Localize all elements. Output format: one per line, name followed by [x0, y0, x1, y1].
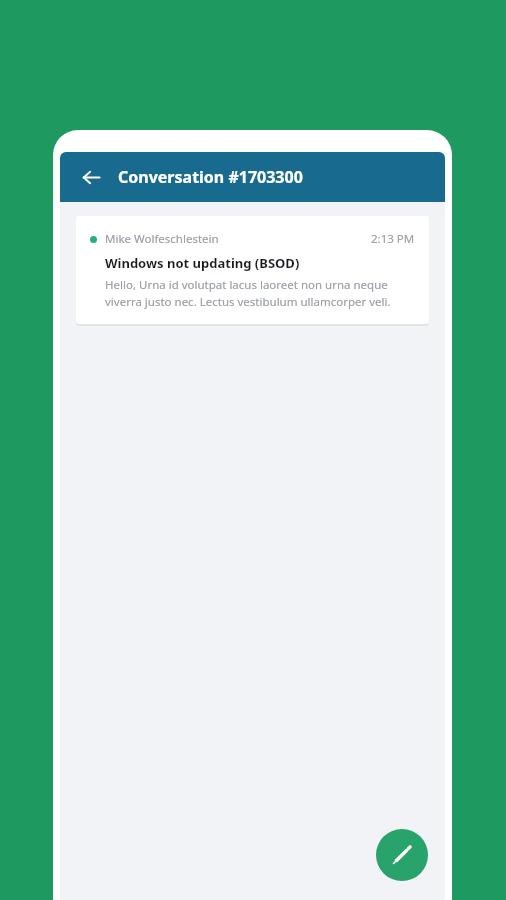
button[interactable]: Back	[75, 161, 107, 193]
staticText: Hello, Urna id volutpat lacus laoreet no…	[105, 277, 415, 309]
staticText: Conversation #1703300	[118, 166, 303, 188]
staticText: Windows not updating (BSOD)	[105, 254, 300, 272]
staticText: Mike Wolfeschlestein	[105, 231, 219, 247]
staticText: 2:13 PM	[371, 231, 415, 247]
button[interactable]: Mike Wolfeschlestein	[76, 216, 429, 324]
button[interactable]: Compose message	[376, 829, 428, 881]
